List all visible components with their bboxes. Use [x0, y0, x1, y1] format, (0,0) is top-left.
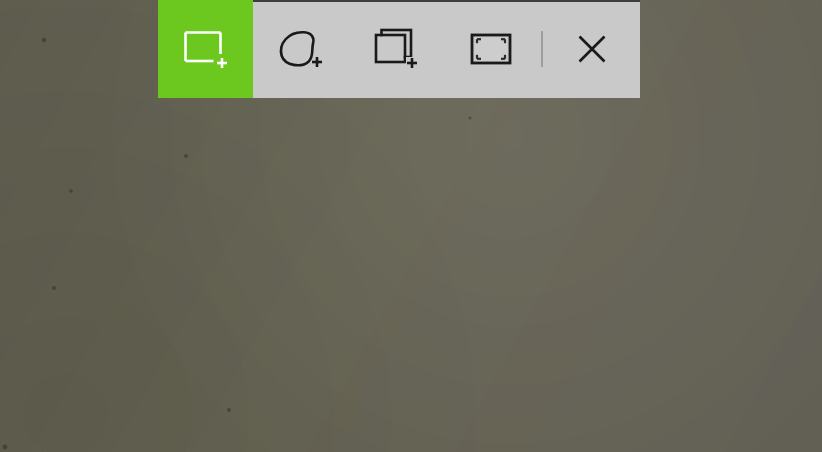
- button[interactable]: Fullscreen snip: [443, 0, 538, 98]
- button[interactable]: Close: [546, 0, 638, 98]
- button[interactable]: Rectangular snip: [158, 0, 253, 98]
- button[interactable]: Freeform snip: [253, 0, 348, 98]
- button[interactable]: Window snip: [348, 0, 443, 98]
